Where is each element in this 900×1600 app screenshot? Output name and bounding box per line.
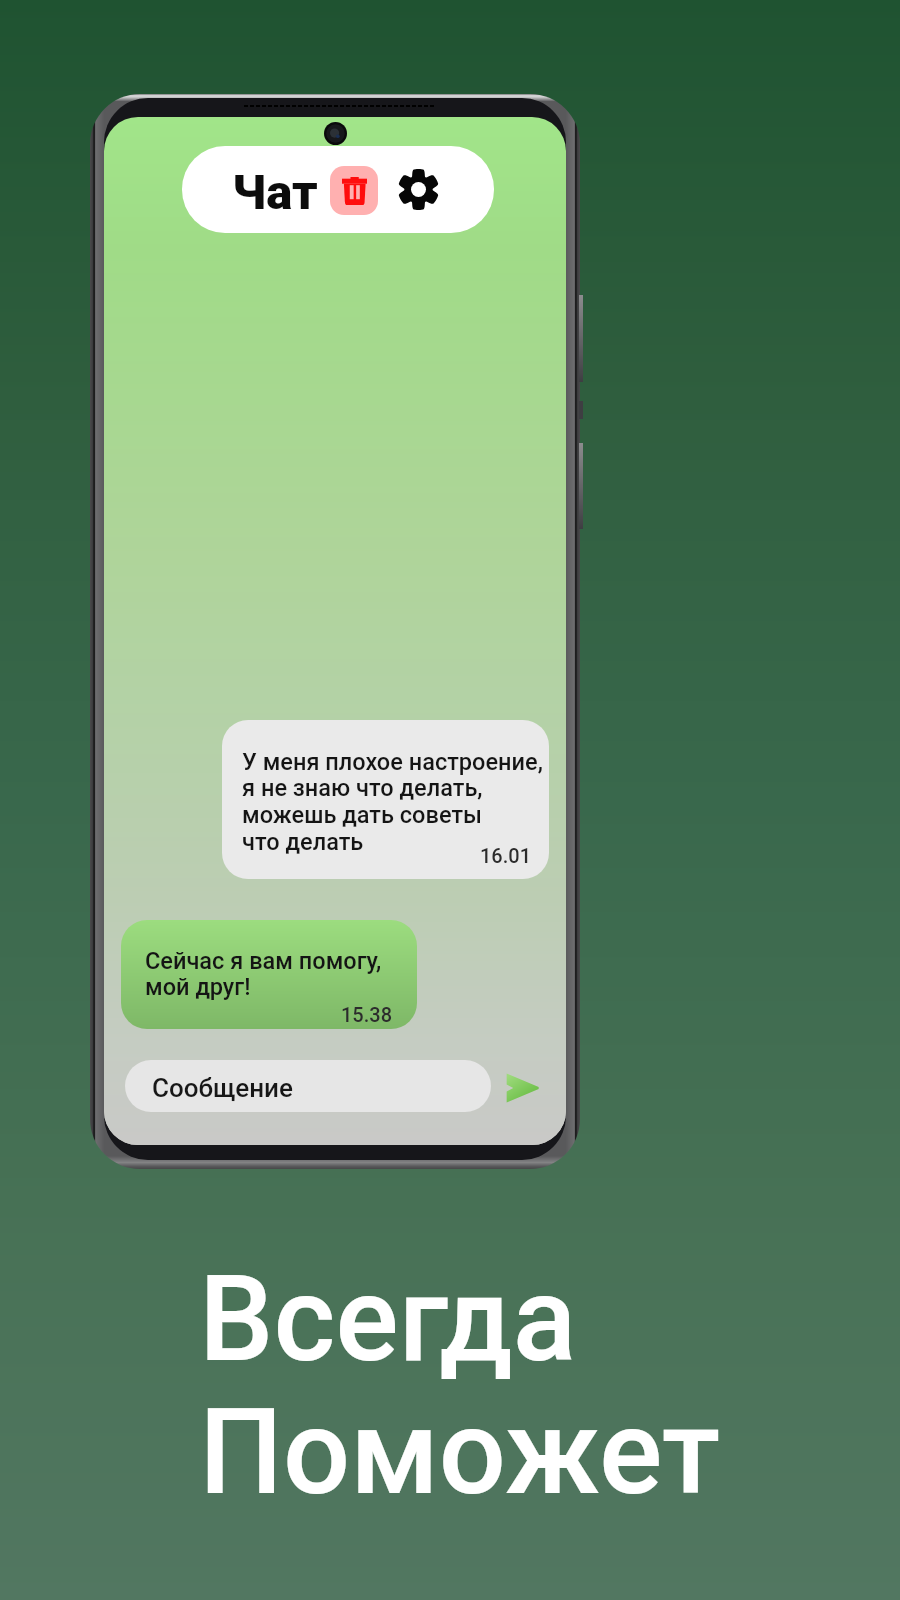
button[interactable]: Send message bbox=[496, 1065, 548, 1111]
staticText: У меня плохое настроение, я не знаю что … bbox=[242, 748, 543, 856]
staticText: 16.01 bbox=[480, 844, 532, 867]
button[interactable]: Settings bbox=[398, 169, 439, 210]
staticText: Чат bbox=[232, 164, 318, 221]
staticText: 15.38 bbox=[341, 1003, 393, 1026]
button[interactable]: У меня плохое настроение, я не знаю что … bbox=[222, 720, 549, 879]
button[interactable]: Сейчас я вам помогу, мой друг! bbox=[121, 920, 417, 1029]
staticText: Всегда Поможет bbox=[199, 1251, 721, 1521]
button[interactable]: Delete chat bbox=[330, 166, 378, 215]
staticText: Сейчас я вам помогу, мой друг! bbox=[145, 947, 382, 1001]
staticText: Сообщение bbox=[152, 1073, 293, 1103]
button[interactable]: Чат bbox=[182, 146, 494, 233]
button[interactable]: Сообщение bbox=[125, 1060, 491, 1112]
